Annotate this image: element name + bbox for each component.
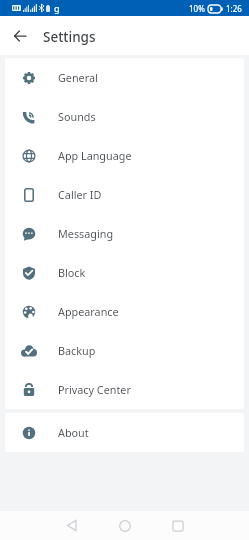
button[interactable]: Backup	[5, 331, 244, 370]
button[interactable]: General	[5, 58, 244, 97]
staticText: App Language	[58, 148, 132, 163]
staticText: Backup	[58, 343, 96, 358]
button[interactable]: Privacy Center	[5, 370, 244, 409]
staticText: 10%	[189, 3, 205, 14]
staticText: Block	[58, 265, 86, 280]
staticText: Messaging	[58, 226, 114, 241]
button[interactable]: Recents	[163, 511, 192, 540]
button[interactable]: Caller ID	[5, 175, 244, 214]
staticText: 1:26	[226, 3, 242, 14]
button[interactable]: Back	[57, 511, 86, 540]
button[interactable]: About	[5, 413, 244, 452]
staticText: About	[58, 425, 89, 440]
staticText: Settings	[43, 28, 96, 46]
button[interactable]: Messaging	[5, 214, 244, 253]
staticText: General	[58, 70, 98, 85]
button[interactable]: App Language	[5, 136, 244, 175]
staticText: Sounds	[58, 109, 96, 124]
staticText: Caller ID	[58, 187, 102, 202]
staticText: Appearance	[58, 304, 119, 319]
staticText: Privacy Center	[58, 382, 131, 397]
button[interactable]: Back	[7, 23, 33, 49]
button[interactable]: Block	[5, 253, 244, 292]
staticText: g	[54, 2, 60, 14]
button[interactable]: Sounds	[5, 97, 244, 136]
button[interactable]: Home	[110, 511, 139, 540]
button[interactable]: Appearance	[5, 292, 244, 331]
